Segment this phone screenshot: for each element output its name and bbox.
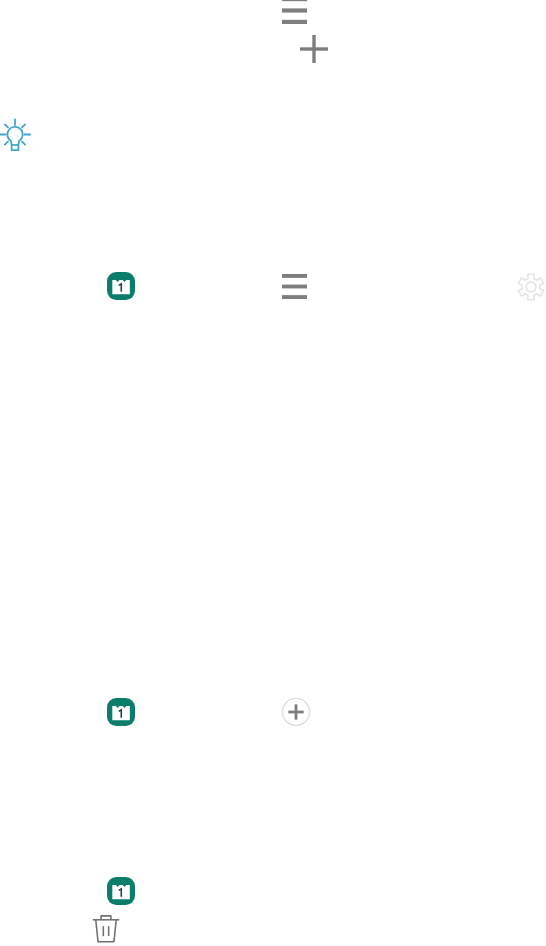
button[interactable]: Reorder <box>282 274 307 299</box>
button[interactable]: Settings <box>517 273 545 301</box>
button[interactable]: Menu <box>282 0 307 24</box>
button[interactable]: Add <box>300 35 328 63</box>
button[interactable]: Delete <box>92 914 120 943</box>
button[interactable]: Tip <box>0 118 31 151</box>
button[interactable] <box>0 684 546 740</box>
button[interactable]: Add item <box>282 698 310 726</box>
button[interactable] <box>0 258 546 314</box>
button[interactable] <box>0 863 546 919</box>
